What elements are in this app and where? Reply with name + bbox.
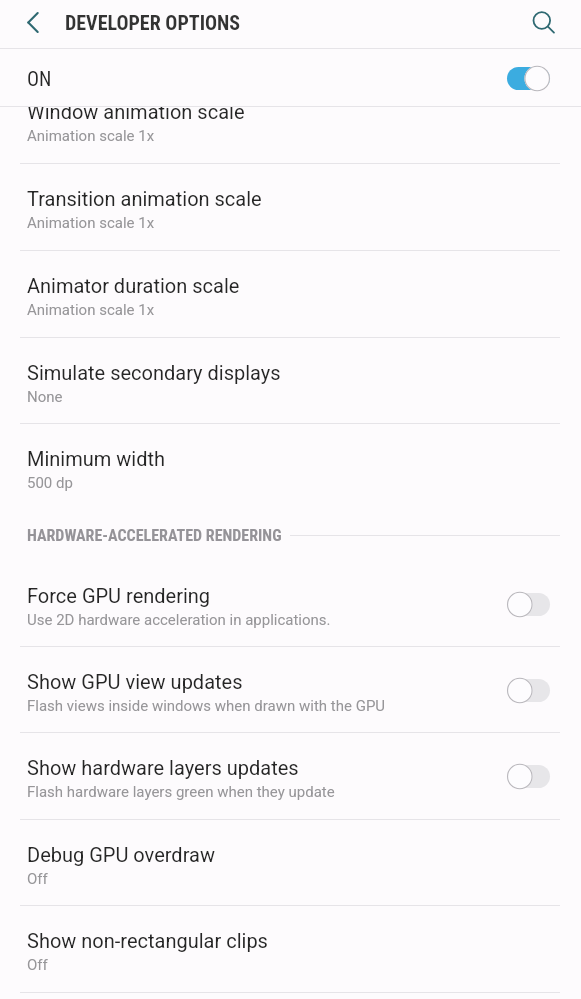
button[interactable]: Window animation scale — [0, 107, 581, 164]
staticText: Off — [27, 870, 48, 888]
staticText: Flash views inside windows when drawn wi… — [27, 697, 386, 715]
staticText: 500 dp — [27, 474, 73, 492]
staticText: Simulate secondary displays — [27, 361, 281, 384]
button[interactable]: Navigate up — [0, 0, 56, 48]
button[interactable]: Transition animation scale — [0, 164, 581, 251]
button[interactable]: Show hardware layers updates — [0, 733, 581, 820]
button[interactable]: Animator duration scale — [0, 251, 581, 338]
button[interactable]: Search — [525, 0, 581, 48]
button[interactable]: Show GPU view updates — [0, 647, 581, 733]
staticText: Transition animation scale — [27, 187, 262, 210]
staticText: Show non-rectangular clips — [27, 929, 268, 952]
staticText: Force GPU rendering — [27, 584, 211, 607]
button[interactable]: Minimum width — [0, 424, 581, 510]
staticText: ON — [27, 67, 52, 90]
staticText: Off — [27, 956, 48, 974]
staticText: Show GPU view updates — [27, 670, 243, 693]
button[interactable]: Show non-rectangular clips — [0, 906, 581, 993]
staticText: Animation scale 1x — [27, 127, 155, 145]
staticText: Animation scale 1x — [27, 214, 155, 232]
button[interactable]: ON — [0, 49, 581, 107]
staticText: Debug GPU overdraw — [27, 843, 215, 866]
staticText: Animation scale 1x — [27, 301, 155, 319]
staticText: None — [27, 388, 63, 406]
staticText: Minimum width — [27, 447, 166, 470]
staticText: Animator duration scale — [27, 274, 240, 297]
staticText: Use 2D hardware acceleration in applicat… — [27, 611, 331, 629]
button[interactable]: Debug GPU overdraw — [0, 820, 581, 906]
staticText: Show hardware layers updates — [27, 756, 299, 779]
staticText: Window animation scale — [27, 107, 245, 123]
staticText: Flash hardware layers green when they up… — [27, 783, 335, 801]
staticText: DEVELOPER OPTIONS — [65, 11, 241, 34]
button[interactable]: Simulate secondary displays — [0, 338, 581, 424]
button[interactable]: Force GPU rendering — [0, 561, 581, 647]
staticText: HARDWARE-ACCELERATED RENDERING — [27, 526, 282, 545]
